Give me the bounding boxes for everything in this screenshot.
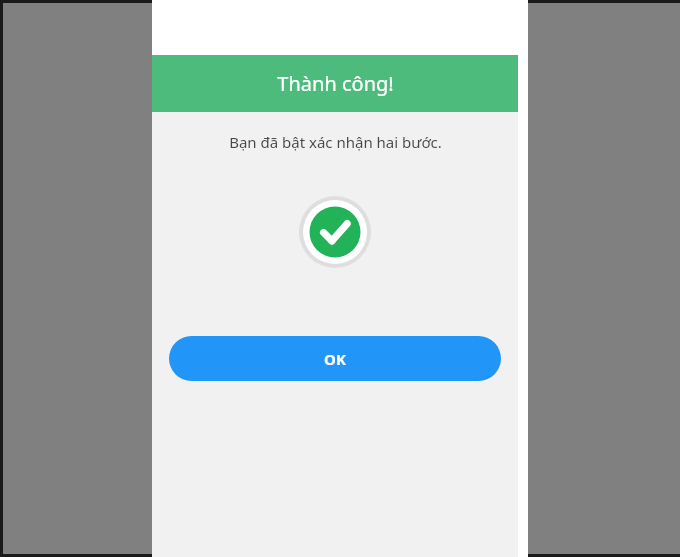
staticText: OK: [324, 349, 346, 369]
staticText: Bạn đã bật xác nhận hai bước.: [229, 132, 442, 152]
staticText: Thành công!: [277, 70, 394, 97]
other: Success: [299, 196, 371, 268]
button[interactable]: OK: [169, 336, 501, 381]
